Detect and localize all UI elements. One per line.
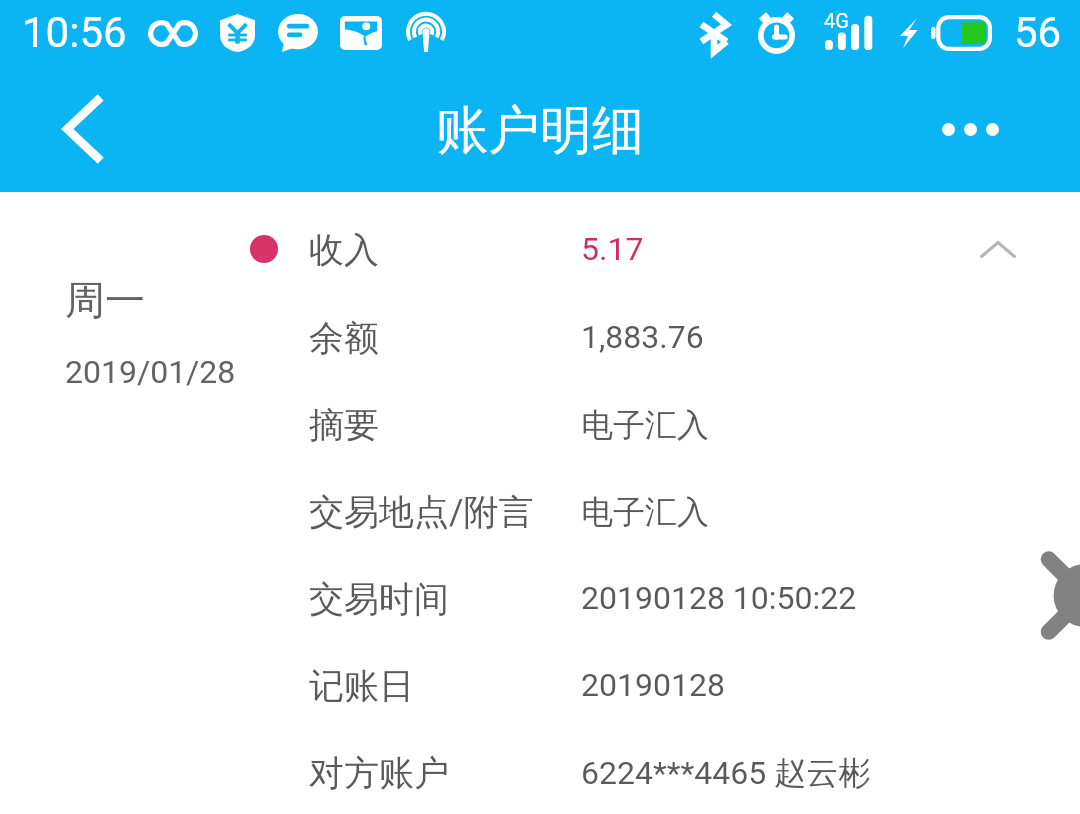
staticText: 56	[1014, 8, 1062, 57]
staticText: 余额	[309, 316, 379, 360]
staticText: 收入	[309, 228, 379, 272]
staticText: 交易地点/附言	[309, 490, 534, 534]
staticText: 交易时间	[309, 577, 449, 621]
button[interactable]: 记账日	[0, 642, 1080, 729]
staticText: 电子汇入	[581, 492, 709, 532]
staticText: 4G	[824, 9, 849, 32]
staticText: 6224***4465 赵云彬	[581, 753, 871, 793]
staticText: 2019/01/28	[65, 353, 236, 391]
button[interactable]: 摘要	[0, 381, 1080, 468]
staticText: 对方账户	[309, 751, 449, 795]
button[interactable]: Back	[38, 84, 130, 174]
staticText: 电子汇入	[581, 405, 709, 445]
staticText: 20190128 10:50:22	[581, 579, 857, 617]
button[interactable]: 余额	[0, 294, 1080, 381]
staticText: 20190128	[581, 666, 725, 704]
button[interactable]: 交易时间	[0, 555, 1080, 642]
staticText: 记账日	[309, 664, 414, 708]
staticText: 10:56	[22, 8, 127, 57]
staticText: 周一	[65, 275, 145, 325]
button[interactable]: 对方账户	[0, 729, 1080, 814]
button[interactable]: Collapse	[955, 206, 1040, 293]
staticText: 账户明细	[436, 98, 644, 164]
button[interactable]: More options	[900, 84, 1040, 174]
button[interactable]: 收入	[0, 206, 1080, 293]
button[interactable]: 交易地点/附言	[0, 468, 1080, 555]
staticText: 5.17	[581, 230, 644, 268]
staticText: 1,883.76	[581, 318, 704, 356]
staticText: 摘要	[309, 403, 379, 447]
